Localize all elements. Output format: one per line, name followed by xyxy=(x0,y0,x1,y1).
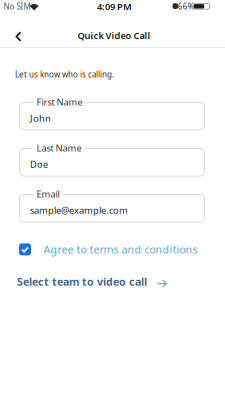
button[interactable]: Agree to terms and conditions xyxy=(19,242,197,256)
staticText: 4:09 PM xyxy=(97,0,132,12)
staticText: John xyxy=(30,112,51,124)
button[interactable]: Back xyxy=(13,30,23,42)
staticText: No SIM xyxy=(3,1,30,12)
staticText: Doe xyxy=(30,158,48,170)
button[interactable]: Select team to video call xyxy=(17,274,167,289)
staticText: First Name xyxy=(36,96,82,108)
staticText: 66% xyxy=(178,1,195,12)
staticText: Select team to video call xyxy=(17,274,147,289)
button[interactable]: Email xyxy=(19,194,205,222)
button[interactable]: First Name xyxy=(19,102,205,130)
staticText: Email xyxy=(36,188,59,200)
staticText: Agree to terms and conditions xyxy=(43,242,197,256)
staticText: Let us know who is calling. xyxy=(15,69,114,80)
staticText: Last Name xyxy=(36,142,81,154)
staticText: sample@example.com xyxy=(30,204,128,216)
staticText: Quick Video Call xyxy=(77,29,150,42)
button[interactable]: Last Name xyxy=(19,148,205,176)
